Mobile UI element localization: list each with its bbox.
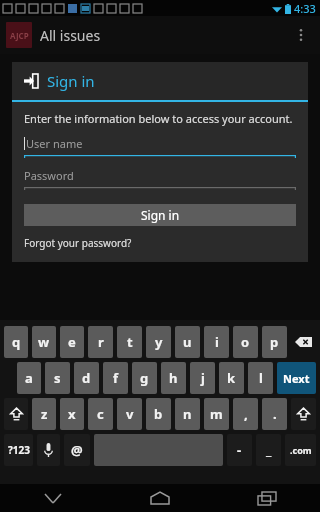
staticText: k bbox=[227, 369, 236, 387]
button[interactable]: i bbox=[204, 326, 229, 358]
button[interactable]: Shift bbox=[4, 398, 28, 430]
button[interactable]: Back bbox=[0, 484, 106, 512]
button[interactable]: g bbox=[132, 362, 157, 394]
staticText: r bbox=[98, 333, 104, 351]
button[interactable]: Home bbox=[106, 484, 213, 512]
staticText: . bbox=[273, 405, 277, 423]
button[interactable]: - bbox=[227, 434, 252, 466]
button[interactable]: , bbox=[233, 398, 258, 430]
button[interactable]: w bbox=[32, 326, 56, 358]
button[interactable]: c bbox=[88, 398, 113, 430]
button[interactable]: .com bbox=[285, 434, 316, 466]
button[interactable]: u bbox=[175, 326, 200, 358]
staticText: v bbox=[126, 405, 134, 423]
button[interactable]: a bbox=[17, 362, 41, 394]
staticText: Next bbox=[283, 371, 310, 386]
staticText: Forgot your password? bbox=[24, 236, 132, 250]
button[interactable]: x bbox=[60, 398, 84, 430]
button[interactable]: q bbox=[4, 326, 28, 358]
button[interactable]: Sign in bbox=[24, 71, 296, 91]
staticText: _ bbox=[266, 441, 272, 459]
button[interactable]: j bbox=[190, 362, 215, 394]
staticText: n bbox=[183, 405, 192, 423]
button[interactable]: e bbox=[60, 326, 84, 358]
button[interactable]: b bbox=[146, 398, 171, 430]
button[interactable]: User name bbox=[24, 136, 296, 158]
button[interactable]: . bbox=[262, 398, 287, 430]
button[interactable]: v bbox=[117, 398, 142, 430]
staticText: z bbox=[41, 405, 48, 423]
staticText: - bbox=[237, 441, 242, 459]
staticText: s bbox=[54, 369, 61, 387]
staticText: @ bbox=[71, 441, 83, 459]
button[interactable]: @ bbox=[64, 434, 90, 466]
staticText: l bbox=[259, 369, 263, 387]
staticText: p bbox=[270, 333, 279, 351]
staticText: User name bbox=[26, 136, 83, 151]
button[interactable]: n bbox=[175, 398, 200, 430]
staticText: ?123 bbox=[8, 443, 30, 457]
staticText: c bbox=[97, 405, 104, 423]
button[interactable]: h bbox=[161, 362, 186, 394]
staticText: .com bbox=[290, 444, 312, 456]
button[interactable]: z bbox=[32, 398, 56, 430]
staticText: Sign in bbox=[47, 71, 95, 91]
button[interactable]: AJCP bbox=[6, 22, 32, 48]
staticText: o bbox=[241, 333, 250, 351]
staticText: m bbox=[210, 405, 223, 423]
button[interactable]: d bbox=[74, 362, 99, 394]
button[interactable]: Next bbox=[277, 362, 316, 394]
staticText: f bbox=[113, 369, 119, 387]
staticText: b bbox=[154, 405, 163, 423]
button[interactable]: r bbox=[88, 326, 113, 358]
staticText: All issues bbox=[40, 26, 101, 45]
button[interactable]: ?123 bbox=[4, 434, 33, 466]
staticText: h bbox=[169, 369, 178, 387]
staticText: j bbox=[201, 369, 205, 387]
button[interactable]: Recent apps bbox=[213, 484, 320, 512]
staticText: i bbox=[215, 333, 219, 351]
button[interactable]: Voice input bbox=[37, 434, 60, 466]
staticText: Sign in bbox=[141, 207, 180, 223]
staticText: 4:33 bbox=[294, 1, 316, 16]
staticText: y bbox=[155, 333, 163, 351]
button[interactable]: _ bbox=[256, 434, 281, 466]
staticText: a bbox=[25, 369, 33, 387]
staticText: w bbox=[38, 333, 50, 351]
button[interactable]: s bbox=[45, 362, 70, 394]
button[interactable]: t bbox=[117, 326, 142, 358]
button[interactable]: k bbox=[219, 362, 244, 394]
button[interactable]: Password bbox=[24, 168, 296, 190]
button[interactable]: o bbox=[233, 326, 258, 358]
button[interactable]: Shift bbox=[291, 398, 316, 430]
staticText: d bbox=[82, 369, 91, 387]
button[interactable]: Backspace bbox=[291, 326, 316, 358]
staticText: q bbox=[12, 333, 21, 351]
button[interactable]: y bbox=[146, 326, 171, 358]
button[interactable]: More options bbox=[282, 16, 320, 54]
staticText: , bbox=[244, 405, 248, 423]
button[interactable]: p bbox=[262, 326, 287, 358]
button[interactable]: Sign in bbox=[24, 204, 296, 226]
button[interactable]: m bbox=[204, 398, 229, 430]
staticText: g bbox=[140, 369, 149, 387]
staticText: x bbox=[68, 405, 76, 423]
staticText: Password bbox=[24, 168, 74, 183]
staticText: t bbox=[127, 333, 133, 351]
staticText: u bbox=[183, 333, 192, 351]
button[interactable]: Forgot your password? bbox=[24, 236, 132, 250]
button[interactable]: l bbox=[248, 362, 273, 394]
staticText: e bbox=[68, 333, 76, 351]
button[interactable]: f bbox=[103, 362, 128, 394]
staticText: AJCP bbox=[10, 30, 29, 41]
staticText: Enter the information below to access yo… bbox=[24, 111, 293, 126]
